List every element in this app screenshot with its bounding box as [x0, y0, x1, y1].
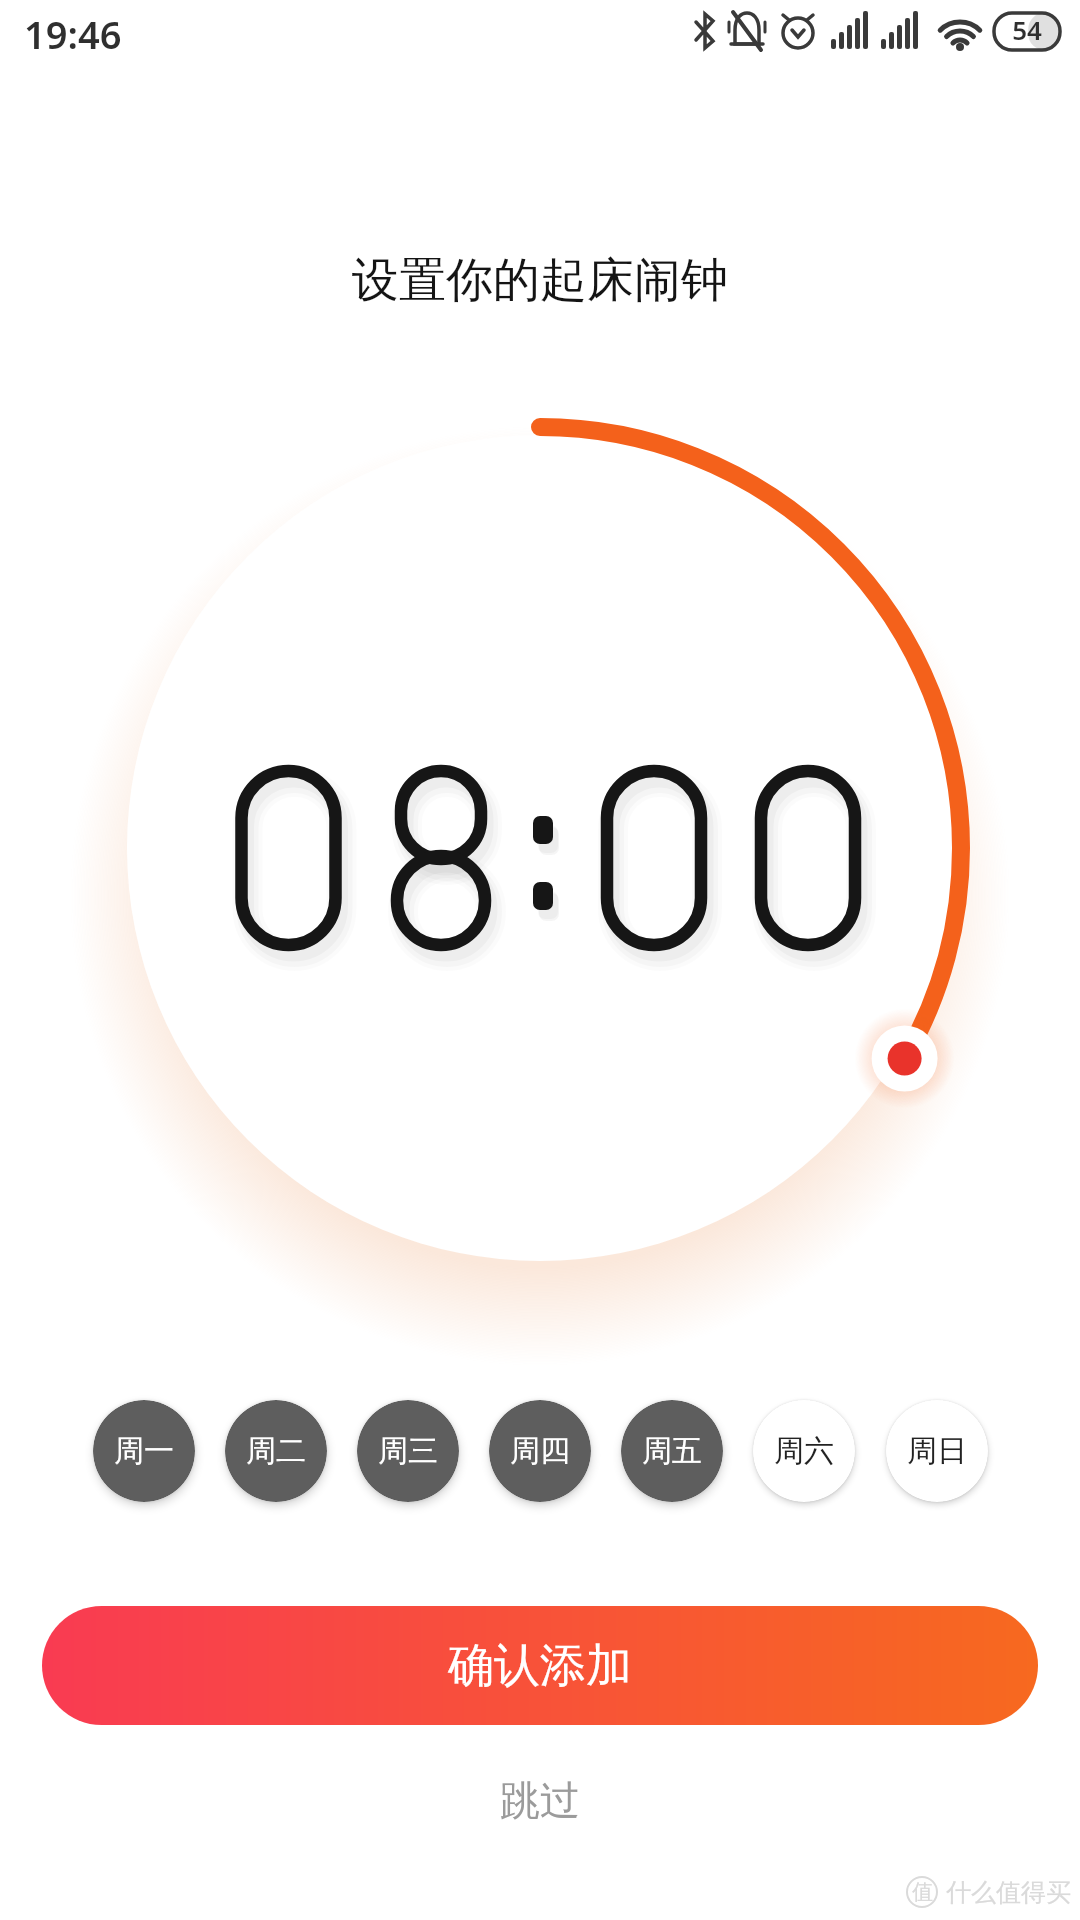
staticText: 周二 [246, 1432, 306, 1470]
staticText: 确认添加 [448, 1637, 632, 1695]
button[interactable]: 跳过 [460, 1760, 620, 1840]
staticText: 设置你的起床闹钟 [0, 251, 1080, 310]
button[interactable]: 确认添加 [42, 1606, 1038, 1725]
staticText: 值 [912, 1879, 933, 1905]
button[interactable]: 周四 [489, 1400, 591, 1502]
button[interactable]: 周二 [225, 1400, 327, 1502]
staticText: 周三 [378, 1432, 438, 1470]
button[interactable]: 周五 [621, 1400, 723, 1502]
staticText: 什么值得买 [946, 1877, 1071, 1908]
staticText: 周六 [774, 1432, 834, 1470]
staticText: 周四 [510, 1432, 570, 1470]
staticText: 54 [994, 12, 1060, 47]
staticText: 周一 [114, 1432, 174, 1470]
staticText: 周日 [907, 1432, 967, 1470]
button[interactable]: 周日 [886, 1400, 988, 1502]
button[interactable]: 周三 [357, 1400, 459, 1502]
staticText: 周五 [642, 1432, 702, 1470]
staticText: 19:46 [24, 8, 122, 60]
staticText: 跳过 [500, 1775, 580, 1825]
button[interactable]: 周一 [93, 1400, 195, 1502]
button[interactable]: 周六 [753, 1400, 855, 1502]
